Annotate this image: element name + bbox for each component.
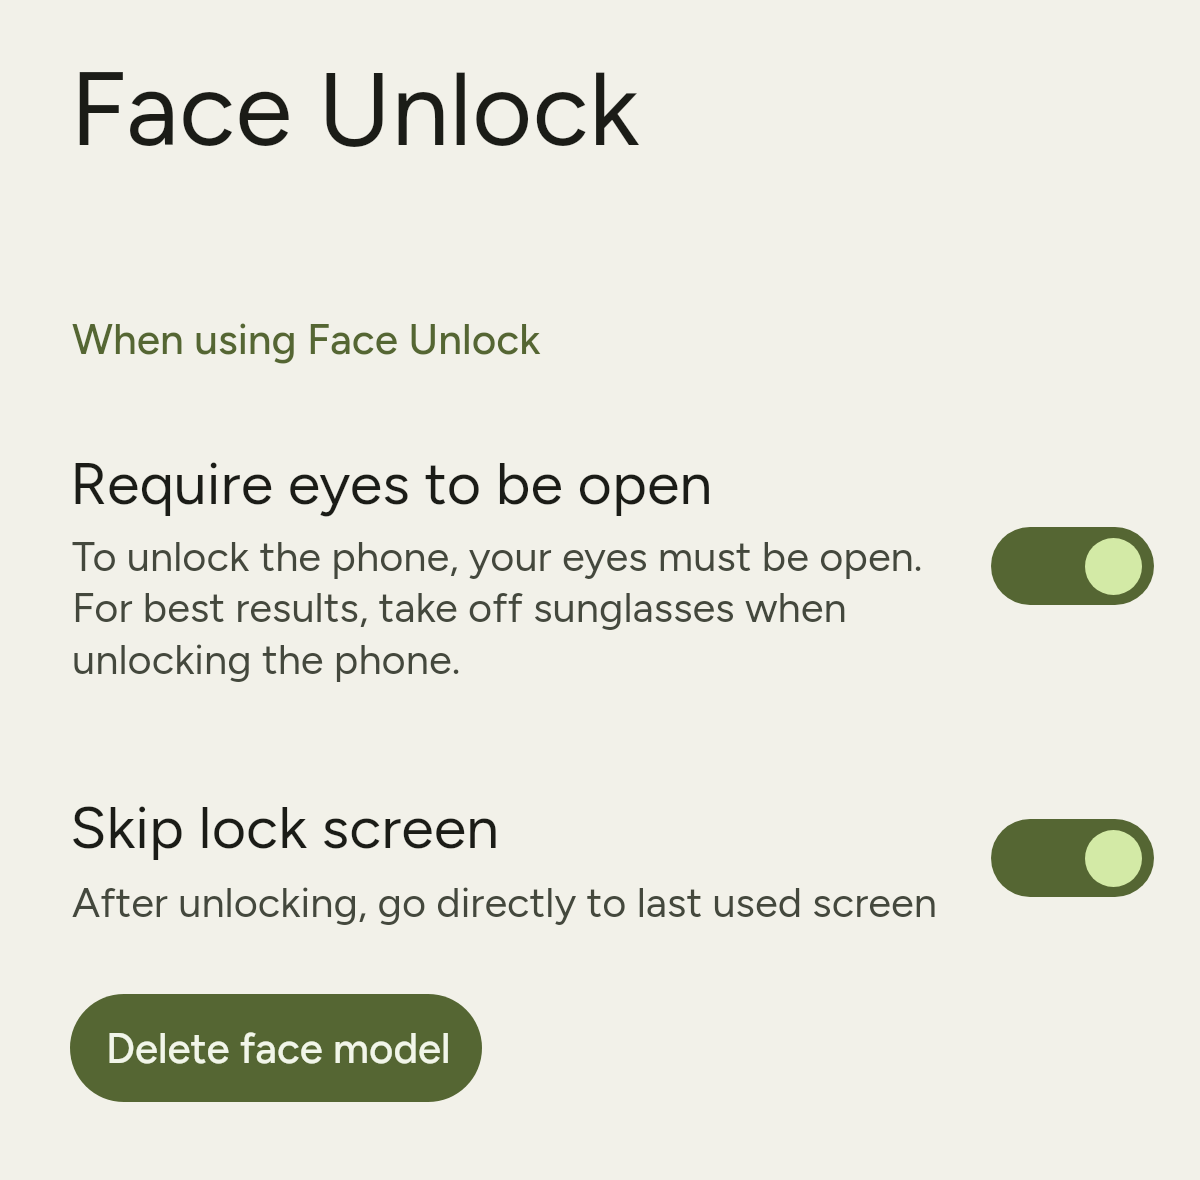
staticText: Delete face model <box>106 1023 451 1073</box>
staticText: Face Unlock <box>70 46 640 171</box>
button[interactable]: Delete face model <box>70 994 482 1102</box>
staticText: Require eyes to be open <box>70 448 713 519</box>
button[interactable]: Require eyes to be open <box>991 527 1154 605</box>
staticText: Skip lock screen <box>70 792 500 863</box>
staticText: When using Face Unlock <box>72 314 541 365</box>
button[interactable]: Require eyes to be open <box>0 421 1200 763</box>
button[interactable]: Skip lock screen <box>991 819 1154 897</box>
button[interactable]: Skip lock screen <box>0 763 1200 969</box>
staticText: To unlock the phone, your eyes must be o… <box>72 531 952 684</box>
staticText: After unlocking, go directly to last use… <box>72 877 952 927</box>
